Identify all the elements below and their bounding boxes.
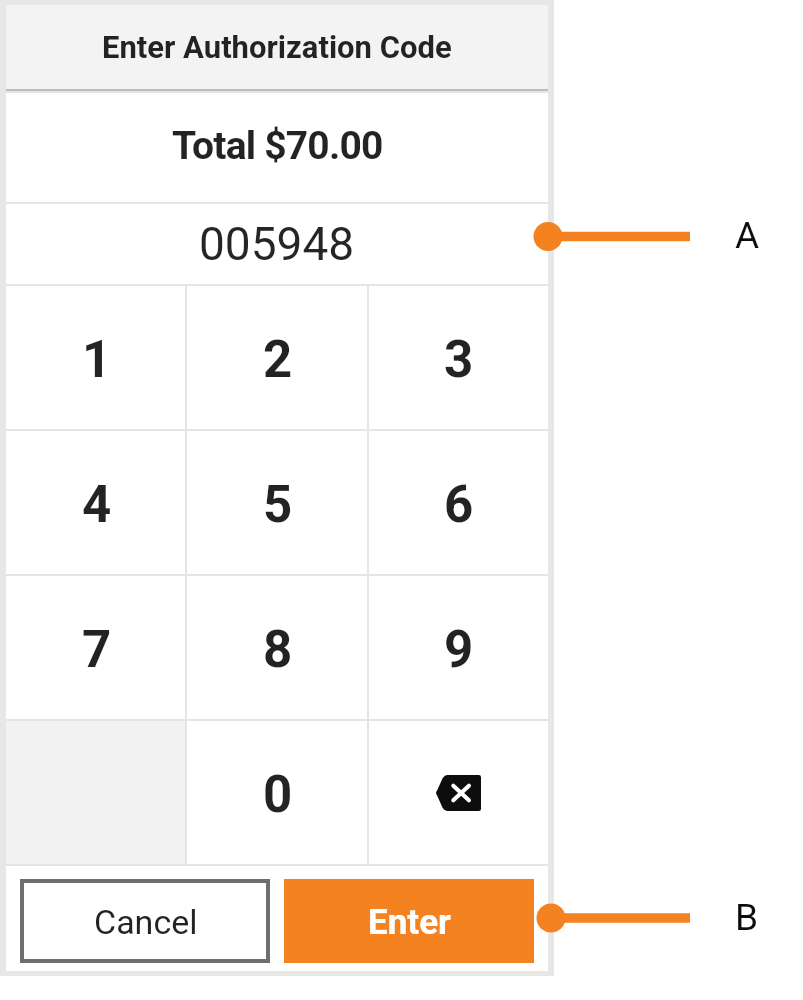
button[interactable]: 6 xyxy=(368,431,548,574)
button[interactable]: 5 xyxy=(186,431,368,574)
staticText: Enter Authorization Code xyxy=(102,29,452,65)
button[interactable]: 8 xyxy=(186,576,368,719)
button[interactable]: 2 xyxy=(186,286,368,429)
button[interactable]: 0 xyxy=(186,721,368,864)
staticText: 005948 xyxy=(199,217,355,271)
staticText: Enter xyxy=(368,902,451,943)
button[interactable]: 7 xyxy=(6,576,186,719)
button[interactable]: Enter xyxy=(284,879,534,963)
staticText: Total $70.00 xyxy=(172,123,383,169)
button[interactable]: 1 xyxy=(6,286,186,429)
staticText: Cancel xyxy=(94,902,198,942)
button[interactable]: Cancel xyxy=(20,879,270,963)
button[interactable]: 9 xyxy=(368,576,548,719)
staticText: 7 xyxy=(82,620,112,680)
staticText: 4 xyxy=(82,475,112,535)
button[interactable]: Backspace xyxy=(368,721,548,864)
staticText: 6 xyxy=(444,475,474,535)
staticText: 1 xyxy=(82,330,112,390)
button[interactable]: 3 xyxy=(368,286,548,429)
staticText: B xyxy=(735,896,759,939)
staticText: 9 xyxy=(444,620,474,680)
staticText: 5 xyxy=(263,475,293,535)
staticText: 0 xyxy=(263,765,293,825)
staticText: 3 xyxy=(444,330,474,390)
staticText: A xyxy=(735,214,760,257)
staticText: 2 xyxy=(263,330,293,390)
staticText: 8 xyxy=(263,620,293,680)
button[interactable]: 4 xyxy=(6,431,186,574)
